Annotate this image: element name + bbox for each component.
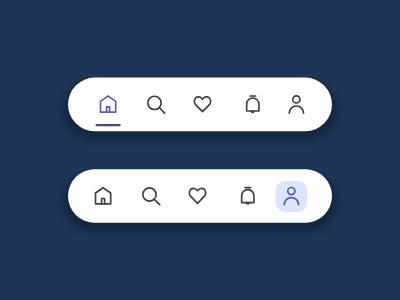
button[interactable]: Notifications xyxy=(234,78,272,132)
button[interactable]: Search xyxy=(136,78,174,132)
button[interactable]: Profile xyxy=(272,169,310,223)
button[interactable]: Profile xyxy=(277,78,315,132)
button[interactable]: Home xyxy=(84,169,122,223)
button[interactable]: Search xyxy=(131,169,169,223)
button[interactable]: Favorites xyxy=(184,78,222,132)
button[interactable]: Notifications xyxy=(229,169,267,223)
button[interactable]: Home xyxy=(89,78,127,132)
button[interactable]: Favorites xyxy=(179,169,217,223)
